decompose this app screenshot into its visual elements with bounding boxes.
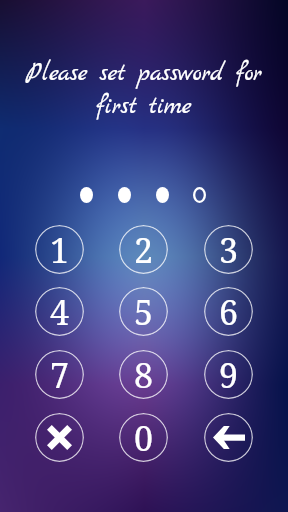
button[interactable]: 4 — [35, 287, 84, 336]
button[interactable]: 3 — [204, 225, 253, 274]
button[interactable]: 1 — [35, 225, 84, 274]
staticText: 9 — [219, 352, 239, 398]
button[interactable]: Backspace — [204, 413, 253, 462]
staticText: 0 — [134, 415, 154, 461]
staticText: 7 — [50, 352, 70, 398]
button[interactable]: 0 — [119, 413, 168, 462]
button[interactable]: 2 — [119, 225, 168, 274]
staticText: 8 — [134, 352, 154, 398]
staticText: 2 — [134, 227, 154, 273]
staticText: 3 — [219, 227, 239, 273]
button[interactable]: 6 — [204, 287, 253, 336]
button[interactable]: 9 — [204, 350, 253, 399]
button[interactable]: 5 — [119, 287, 168, 336]
staticText: 1 — [50, 227, 70, 273]
button[interactable]: 7 — [35, 350, 84, 399]
staticText: 5 — [134, 289, 154, 335]
button[interactable]: Clear — [35, 413, 84, 462]
staticText: 4 — [50, 289, 70, 335]
staticText: 6 — [219, 289, 239, 335]
button[interactable]: 8 — [119, 350, 168, 399]
staticText: Please set password for first time — [26, 58, 262, 123]
